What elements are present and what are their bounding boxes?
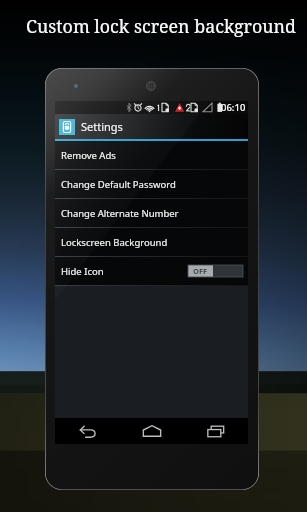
button[interactable]: Hide Icon — [55, 257, 248, 285]
staticText: Custom lock screen background — [26, 14, 296, 38]
staticText: OFF — [193, 266, 208, 276]
staticText: 06:10 — [221, 101, 246, 114]
button[interactable]: Recent apps — [204, 419, 228, 443]
button[interactable]: Settings — [55, 114, 248, 139]
button[interactable]: Hide icon toggle, off — [188, 265, 243, 277]
button[interactable]: Back — [76, 419, 100, 443]
button[interactable]: Change Default Password — [55, 170, 248, 198]
button[interactable]: Change Alternate Number — [55, 199, 248, 227]
staticText: Lockscreen Background — [61, 236, 168, 249]
button[interactable]: Remove Ads — [55, 141, 248, 169]
staticText: Change Default Password — [61, 178, 176, 191]
staticText: Hide Icon — [61, 265, 104, 278]
staticText: Change Alternate Number — [61, 207, 179, 220]
button[interactable]: Home — [140, 419, 164, 443]
staticText: Remove Ads — [61, 149, 116, 162]
staticText: Settings — [81, 119, 123, 134]
button[interactable]: Lockscreen Background — [55, 228, 248, 256]
